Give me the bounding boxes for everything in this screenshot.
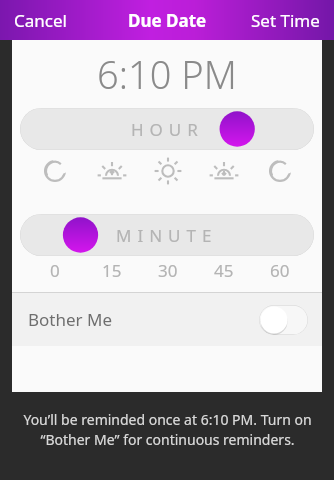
staticText: 30 bbox=[158, 259, 178, 282]
button[interactable]: HOUR bbox=[20, 108, 314, 150]
button[interactable]: Cancel bbox=[0, 1, 81, 40]
button[interactable]: MINUTE bbox=[20, 214, 314, 256]
button[interactable]: Sunrise bbox=[83, 150, 140, 192]
button[interactable]: Night bbox=[252, 150, 308, 192]
staticText: Due Date bbox=[128, 9, 207, 32]
button[interactable]: Sunset bbox=[196, 150, 252, 192]
staticText: 6:10 PM bbox=[97, 48, 237, 100]
button[interactable]: Set Time bbox=[237, 1, 334, 40]
staticText: Cancel bbox=[14, 9, 67, 32]
staticText: 60 bbox=[270, 259, 290, 282]
staticText: 0 bbox=[50, 259, 60, 282]
staticText: 15 bbox=[102, 259, 122, 282]
staticText: MINUTE bbox=[116, 224, 218, 247]
staticText: Bother Me bbox=[28, 308, 113, 331]
staticText: 45 bbox=[214, 259, 234, 282]
button[interactable]: Midday bbox=[140, 150, 196, 192]
button[interactable]: Bother Me toggle bbox=[259, 305, 308, 335]
button[interactable]: Bother Me bbox=[12, 293, 322, 346]
staticText: HOUR bbox=[131, 118, 204, 141]
staticText: You’ll be reminded once at 6:10 PM. Turn… bbox=[23, 410, 312, 450]
staticText: Set Time bbox=[251, 9, 320, 32]
button[interactable]: Night bbox=[26, 150, 83, 192]
